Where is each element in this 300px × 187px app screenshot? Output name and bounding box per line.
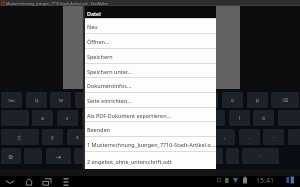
staticText: Datei	[87, 10, 101, 17]
staticText: .	[249, 134, 251, 141]
button[interactable]: t	[124, 92, 145, 108]
button[interactable]: h	[155, 110, 176, 126]
staticText: a	[41, 115, 44, 122]
staticText: b	[149, 134, 153, 141]
button[interactable]: -	[263, 129, 284, 145]
button[interactable]: Öffnen...	[85, 33, 216, 48]
button[interactable]: i	[197, 92, 218, 108]
staticText: l	[239, 115, 241, 122]
staticText: y	[51, 134, 54, 141]
staticText: m	[198, 134, 203, 141]
button[interactable]: v	[116, 129, 137, 145]
staticText: Musterrechnung_Juergen_7710-Stadt-Artike…	[6, 1, 109, 6]
button[interactable]: e	[75, 92, 96, 108]
button[interactable]: w	[50, 92, 71, 108]
button[interactable]: Speichern	[85, 48, 216, 63]
button[interactable]: Recent apps	[39, 174, 55, 187]
staticText: r	[108, 97, 111, 104]
button[interactable]: Speichern unter...	[85, 63, 216, 78]
button[interactable]: b	[140, 129, 161, 145]
staticText: /	[84, 153, 86, 160]
button[interactable]: Neu	[85, 18, 216, 33]
button[interactable]: c	[91, 129, 112, 145]
button[interactable]: q	[26, 92, 47, 108]
button[interactable]: ,	[214, 129, 235, 145]
button[interactable]: Home	[21, 174, 37, 187]
button[interactable]: ⌫	[271, 92, 299, 108]
button[interactable]	[98, 148, 206, 164]
button[interactable]: Beenden	[85, 121, 216, 136]
button[interactable]: ⇧	[1, 129, 39, 145]
staticText: p	[256, 97, 260, 104]
staticText: n	[174, 134, 178, 141]
staticText: k	[213, 115, 216, 122]
button[interactable]: l	[229, 110, 250, 126]
staticText: ,	[224, 134, 226, 141]
staticText: 1 Musterrechnung_Juergen_7710-Stadt-Arti…	[87, 141, 216, 148]
staticText: ö	[262, 115, 266, 122]
button[interactable]: 2 angebot_ohne_unterschrift.odt	[85, 151, 216, 169]
button[interactable]: g	[131, 110, 152, 126]
staticText: Seite einrichten...	[87, 97, 132, 104]
button[interactable]: Seite einrichten...	[85, 92, 216, 107]
staticText: f	[116, 115, 118, 122]
button[interactable]: Tab	[1, 92, 22, 108]
button[interactable]: r	[99, 92, 120, 108]
staticText: q	[35, 97, 39, 104]
staticText: Als PDF-Dokument exportieren...	[87, 112, 171, 119]
button[interactable]: m	[190, 129, 211, 145]
staticText: ·	[260, 152, 262, 160]
staticText: ⚙	[8, 153, 14, 160]
staticText: c	[100, 134, 103, 141]
staticText: x	[76, 134, 79, 141]
button[interactable]: p	[247, 92, 268, 108]
staticText: Dokumentinfos...	[87, 82, 132, 89]
staticText: h	[164, 115, 168, 122]
staticText: w	[59, 97, 63, 104]
button[interactable]: Dokumentinfos...	[85, 77, 216, 92]
staticText: s	[66, 115, 69, 122]
staticText: e	[84, 97, 87, 104]
button[interactable]: Back	[2, 174, 18, 187]
button[interactable]: d	[82, 110, 103, 126]
button[interactable]: z	[148, 92, 169, 108]
button[interactable]	[210, 148, 223, 164]
button[interactable]: /	[74, 148, 95, 164]
staticText: Neu	[87, 23, 98, 30]
button[interactable]: Als PDF-Dokument exportieren...	[85, 107, 216, 122]
staticText: g	[140, 115, 144, 122]
staticText: d	[91, 115, 95, 122]
button[interactable]: x	[67, 129, 88, 145]
button[interactable]: u	[173, 92, 194, 108]
button[interactable]: ⚙	[1, 148, 21, 164]
button[interactable]: Menu	[58, 174, 74, 187]
button[interactable]: o	[222, 92, 243, 108]
button[interactable]: ⇥	[46, 148, 71, 164]
staticText: -	[273, 134, 275, 141]
button[interactable]: ö	[253, 110, 274, 126]
button[interactable]: f	[106, 110, 127, 126]
staticText: ⇧	[17, 134, 23, 141]
button[interactable]: n	[165, 129, 186, 145]
button[interactable]: 1 Musterrechnung_Juergen_7710-Stadt-Arti…	[85, 136, 216, 151]
button[interactable]: j	[180, 110, 201, 126]
staticText: Tab	[8, 98, 15, 103]
button[interactable]: k	[204, 110, 225, 126]
button[interactable]: y	[42, 129, 63, 145]
staticText: Speichern	[87, 53, 113, 60]
staticText: Speichern unter...	[87, 68, 132, 75]
button[interactable]: a	[32, 110, 53, 126]
button[interactable]: Datei	[85, 6, 216, 18]
button[interactable]: s	[57, 110, 78, 126]
